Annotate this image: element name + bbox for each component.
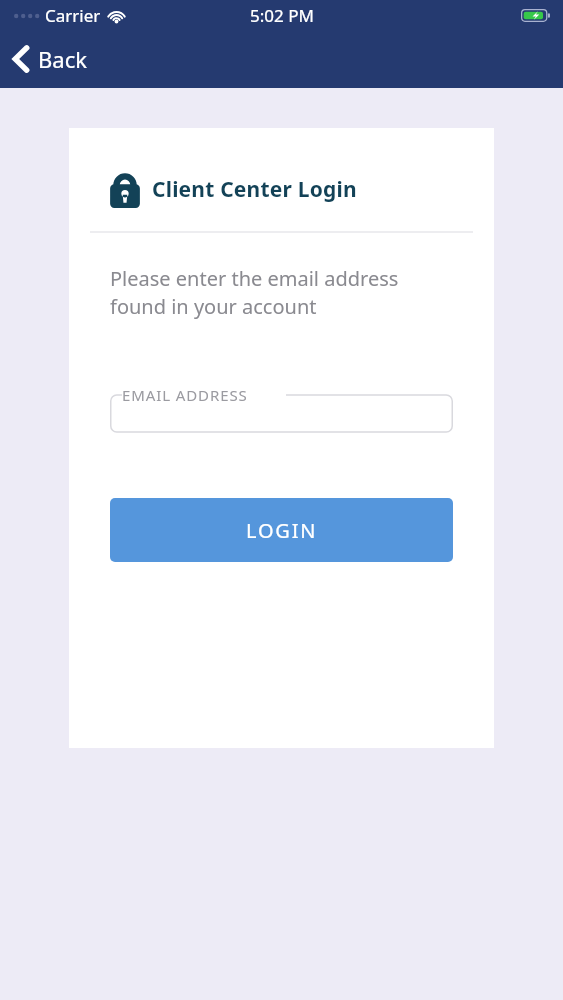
staticText: Back <box>38 44 87 74</box>
staticText: 5:02 PM <box>250 4 314 27</box>
button[interactable]: LOGIN <box>110 498 453 562</box>
staticText: LOGIN <box>246 517 318 544</box>
staticText: Please enter the email address found in … <box>110 265 399 320</box>
button[interactable]: EMAIL ADDRESS <box>110 382 453 446</box>
staticText: EMAIL ADDRESS <box>122 385 248 405</box>
button[interactable]: Back <box>0 30 101 88</box>
staticText: Carrier <box>45 4 101 27</box>
staticText: Client Center Login <box>152 175 357 204</box>
